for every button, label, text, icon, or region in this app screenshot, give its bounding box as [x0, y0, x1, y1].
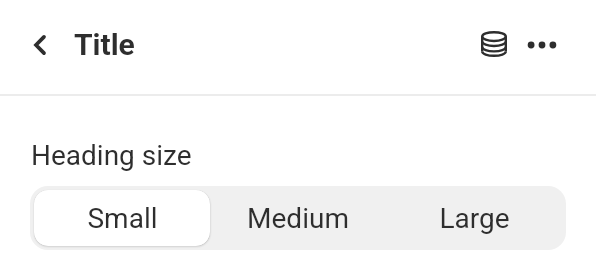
- staticText: Title: [74, 27, 135, 62]
- button[interactable]: Large: [386, 190, 562, 246]
- button[interactable]: More options: [520, 23, 564, 67]
- staticText: Heading size: [31, 139, 192, 172]
- button[interactable]: Storage: [472, 23, 516, 67]
- button[interactable]: Back: [18, 23, 62, 67]
- staticText: Small: [87, 202, 158, 235]
- staticText: Medium: [247, 202, 349, 235]
- button[interactable]: Small: [34, 190, 210, 246]
- staticText: Large: [439, 202, 510, 235]
- button[interactable]: Medium: [210, 190, 386, 246]
